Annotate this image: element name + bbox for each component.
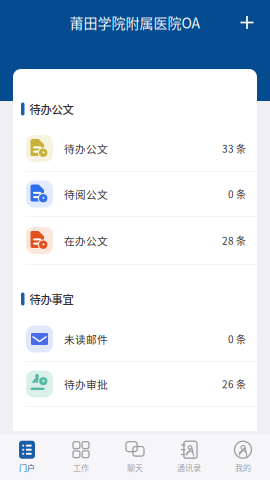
staticText: 未读邮件 <box>64 331 108 347</box>
staticText: 26 条 <box>222 377 246 391</box>
staticText: 门户 <box>19 462 35 473</box>
button[interactable]: 待办公文 <box>13 126 257 171</box>
staticText: 在办公文 <box>64 233 108 248</box>
staticText: 待办审批 <box>64 376 108 392</box>
staticText: 我的 <box>235 462 251 473</box>
staticText: 莆田学院附属医院OA <box>69 12 200 33</box>
button[interactable]: 待阅公文 <box>13 172 257 216</box>
staticText: 待办事宜 <box>29 291 73 307</box>
staticText: 待阅公文 <box>64 186 108 202</box>
staticText: 28 条 <box>222 233 246 248</box>
staticText: 通讯录 <box>177 462 201 473</box>
staticText: 0 条 <box>228 332 246 346</box>
button[interactable]: 聊天 <box>108 434 162 480</box>
button[interactable]: 未读邮件 <box>13 317 257 361</box>
staticText: 待办公文 <box>64 141 108 156</box>
staticText: 工作 <box>73 462 89 473</box>
button[interactable]: 通讯录 <box>162 434 216 480</box>
staticText: 33 条 <box>222 141 246 156</box>
button[interactable]: 我的 <box>216 434 270 480</box>
button[interactable]: Add <box>231 6 263 38</box>
staticText: 待办公文 <box>29 101 73 117</box>
button[interactable]: 门户 <box>0 434 54 480</box>
button[interactable]: 在办公文 <box>13 217 257 264</box>
button[interactable]: 待办审批 <box>13 362 257 406</box>
staticText: 0 条 <box>228 187 246 201</box>
button[interactable]: 工作 <box>54 434 108 480</box>
staticText: 聊天 <box>127 462 143 473</box>
